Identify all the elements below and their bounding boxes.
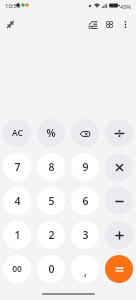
button[interactable]: 9 [71,153,99,181]
button[interactable]: 8 [37,153,65,181]
staticText: 9 [82,160,89,174]
button[interactable]: 4 [3,187,31,215]
button[interactable]: 7 [3,153,31,181]
staticText: 3 [82,228,89,242]
staticText: 5 [48,194,55,208]
staticText: % [46,126,56,140]
button[interactable]: Add [105,221,133,249]
button[interactable]: Collapse [2,16,19,33]
staticText: , [84,265,87,279]
button[interactable]: Multiply [105,153,133,181]
button[interactable]: AC [3,119,31,147]
staticText: 0 [48,262,55,276]
staticText: 2 [48,228,55,242]
button[interactable]: 3 [71,221,99,249]
button[interactable]: Equals [105,255,133,283]
button[interactable]: History [84,16,101,33]
staticText: 4 [14,194,21,208]
staticText: 45% [120,3,131,10]
staticText: 1 [14,228,21,242]
button[interactable]: , [71,255,99,283]
staticText: 10:50 [5,2,21,10]
button[interactable]: 5 [37,187,65,215]
staticText: 6 [82,194,89,208]
button[interactable]: Keypad layout [101,16,118,33]
button[interactable]: 1 [3,221,31,249]
staticText: 7 [14,160,21,174]
button[interactable]: 2 [37,221,65,249]
button[interactable]: 0 [37,255,65,283]
button[interactable]: Divide [105,119,133,147]
button[interactable]: Backspace [71,119,99,147]
staticText: 8 [48,160,55,174]
staticText: AC [12,127,23,139]
button[interactable]: Subtract [105,187,133,215]
button[interactable]: More options [117,16,134,33]
staticText: 00 [12,263,22,275]
button[interactable]: % [37,119,65,147]
button[interactable]: 00 [3,255,31,283]
button[interactable]: 6 [71,187,99,215]
